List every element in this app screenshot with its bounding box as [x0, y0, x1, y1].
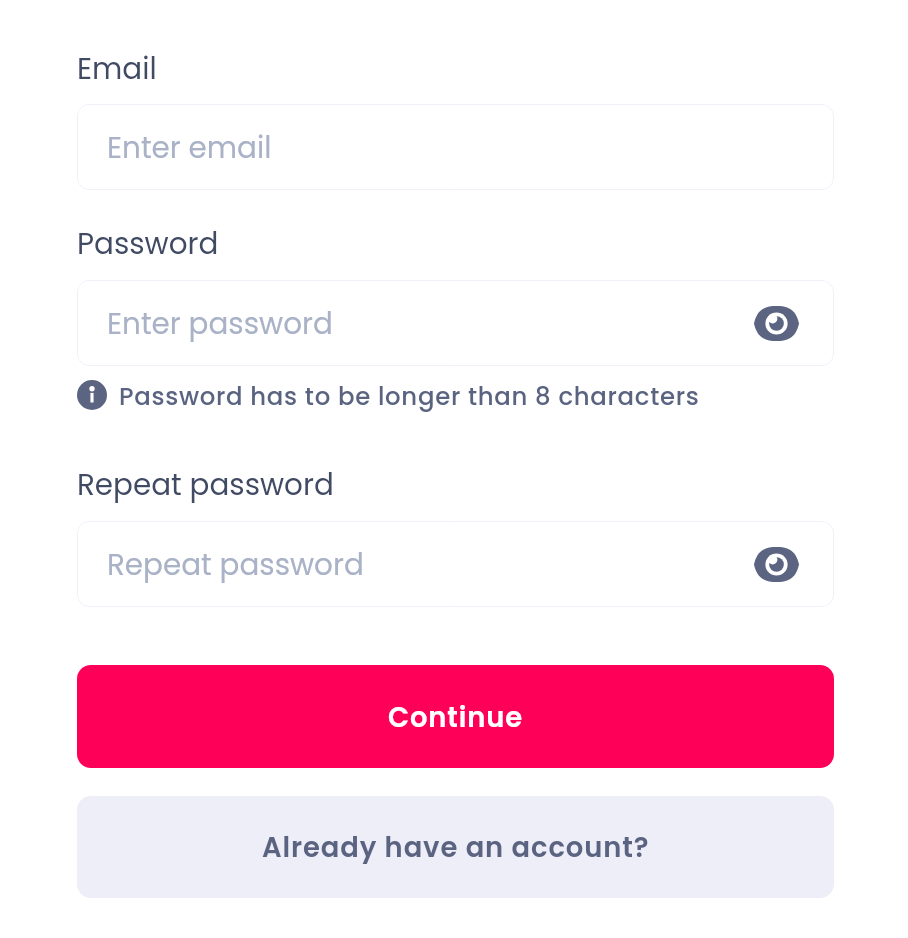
staticText: Repeat password — [77, 464, 334, 505]
button[interactable]: Repeat password — [77, 521, 834, 607]
button[interactable]: Enter email — [77, 104, 834, 190]
staticText: Password — [77, 223, 219, 264]
button[interactable]: Already have an account? — [77, 796, 834, 898]
staticText: Repeat password — [107, 544, 364, 585]
button[interactable]: Continue — [77, 665, 834, 768]
staticText: Continue — [388, 698, 524, 736]
button[interactable]: Enter password — [77, 280, 834, 366]
button[interactable]: Show password — [744, 532, 808, 596]
button[interactable]: Show password — [744, 291, 808, 355]
staticText: Already have an account? — [262, 828, 650, 866]
staticText: Enter email — [107, 127, 272, 168]
staticText: Password has to be longer than 8 charact… — [119, 379, 700, 413]
staticText: Enter password — [107, 303, 333, 344]
staticText: Email — [77, 48, 157, 89]
